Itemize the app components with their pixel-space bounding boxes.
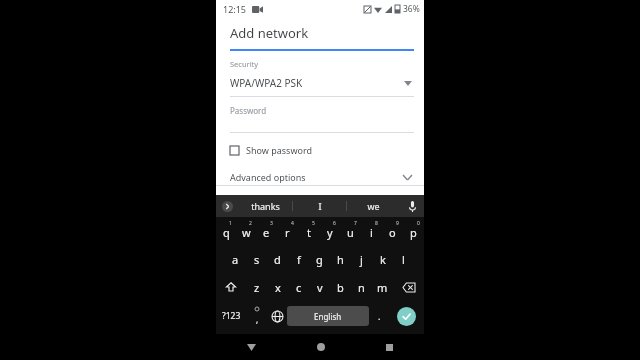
- staticText: 8: [375, 220, 378, 227]
- staticText: f: [297, 252, 301, 267]
- button[interactable]: m: [372, 273, 393, 301]
- staticText: 5: [312, 220, 315, 227]
- staticText: Add network: [230, 24, 309, 42]
- staticText: 36%: [403, 3, 420, 15]
- staticText: r: [285, 225, 290, 240]
- staticText: thanks: [251, 200, 280, 212]
- staticText: I: [318, 200, 322, 212]
- staticText: c: [296, 280, 302, 295]
- button[interactable]: English: [287, 306, 369, 326]
- button[interactable]: 1: [216, 217, 236, 245]
- button[interactable]: 7: [340, 217, 361, 245]
- button[interactable]: b: [330, 273, 351, 301]
- staticText: l: [402, 252, 405, 267]
- staticText: 6: [333, 220, 336, 227]
- button[interactable]: WPA/WPA2 PSK: [216, 76, 424, 90]
- staticText: Password: [230, 105, 267, 116]
- staticText: d: [274, 252, 281, 267]
- staticText: 7: [354, 220, 357, 227]
- staticText: ,: [256, 314, 259, 325]
- staticText: Advanced options: [230, 171, 306, 183]
- staticText: z: [254, 280, 260, 295]
- button[interactable]: Recent apps: [355, 334, 424, 360]
- button[interactable]: h: [330, 245, 351, 273]
- button[interactable]: f: [288, 245, 309, 273]
- staticText: e: [263, 225, 270, 240]
- button[interactable]: k: [372, 245, 393, 273]
- button[interactable]: 6: [319, 217, 340, 245]
- staticText: English: [314, 311, 342, 322]
- staticText: 0: [417, 220, 420, 227]
- staticText: 1: [229, 220, 232, 227]
- staticText: 12:15: [223, 3, 247, 15]
- button[interactable]: 5: [298, 217, 319, 245]
- button[interactable]: n: [351, 273, 372, 301]
- staticText: Show password: [246, 144, 312, 156]
- button[interactable]: More suggestions: [216, 195, 238, 217]
- staticText: m: [377, 280, 388, 295]
- staticText: s: [254, 252, 260, 267]
- staticText: ?123: [222, 310, 241, 322]
- staticText: 9: [396, 220, 399, 227]
- button[interactable]: 2: [236, 217, 256, 245]
- staticText: a: [232, 252, 239, 267]
- button[interactable]: g: [309, 245, 330, 273]
- button[interactable]: 4: [277, 217, 298, 245]
- staticText: b: [337, 280, 344, 295]
- button[interactable]: Home: [286, 334, 355, 360]
- button[interactable]: Voice input: [400, 195, 424, 217]
- button[interactable]: 3: [256, 217, 277, 245]
- staticText: q: [223, 225, 230, 240]
- staticText: t: [307, 225, 311, 240]
- button[interactable]: a: [225, 245, 246, 273]
- staticText: 3: [270, 220, 273, 227]
- button[interactable]: ?123: [216, 301, 247, 331]
- button[interactable]: Enter: [389, 301, 424, 331]
- staticText: 2: [249, 220, 252, 227]
- staticText: x: [275, 280, 281, 295]
- staticText: v: [317, 280, 323, 295]
- button[interactable]: z: [246, 273, 267, 301]
- staticText: n: [358, 280, 365, 295]
- button[interactable]: Back: [216, 334, 286, 360]
- staticText: 4: [291, 220, 294, 227]
- staticText: y: [327, 225, 333, 240]
- button[interactable]: thanks: [238, 195, 292, 217]
- button[interactable]: Period: [369, 301, 389, 331]
- staticText: we: [367, 200, 380, 212]
- button[interactable]: Comma: [247, 301, 267, 331]
- staticText: j: [360, 252, 363, 267]
- button[interactable]: Backspace: [393, 273, 424, 301]
- button[interactable]: Change language: [267, 301, 287, 331]
- button[interactable]: 9: [382, 217, 403, 245]
- staticText: i: [370, 225, 373, 240]
- button[interactable]: Show password: [216, 144, 424, 156]
- button[interactable]: j: [351, 245, 372, 273]
- button[interactable]: x: [267, 273, 288, 301]
- staticText: h: [337, 252, 344, 267]
- button[interactable]: Advanced options: [216, 171, 424, 183]
- staticText: k: [380, 252, 386, 267]
- button[interactable]: 0: [403, 217, 424, 245]
- staticText: o: [389, 225, 396, 240]
- button[interactable]: Shift: [216, 273, 246, 301]
- button[interactable]: l: [393, 245, 414, 273]
- button[interactable]: c: [288, 273, 309, 301]
- staticText: WPA/WPA2 PSK: [230, 76, 303, 90]
- staticText: g: [316, 252, 323, 267]
- button[interactable]: 8: [361, 217, 382, 245]
- button[interactable]: s: [246, 245, 267, 273]
- staticText: Security: [230, 59, 259, 69]
- staticText: u: [347, 225, 354, 240]
- staticText: p: [410, 225, 417, 240]
- button[interactable]: v: [309, 273, 330, 301]
- button[interactable]: we: [347, 195, 400, 217]
- button[interactable]: d: [267, 245, 288, 273]
- staticText: w: [242, 225, 251, 240]
- staticText: .: [378, 310, 381, 322]
- button[interactable]: I: [293, 195, 346, 217]
